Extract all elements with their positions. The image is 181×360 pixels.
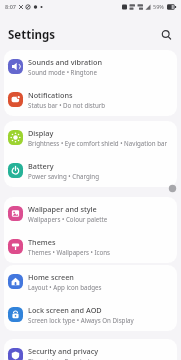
button[interactable]: Lock screen and AOD (4, 298, 177, 331)
staticText: Biometrics • Permission manager (28, 357, 125, 360)
staticText: Notifications (28, 90, 73, 100)
staticText: Status bar • Do not disturb (28, 101, 106, 109)
staticText: Themes • Wallpapers • Icons (28, 248, 111, 256)
staticText: Battery (28, 161, 54, 171)
button[interactable] (158, 26, 175, 43)
staticText: Sounds and vibration (28, 57, 103, 67)
staticText: Themes (28, 237, 56, 247)
staticText: Screen lock type • Always On Display (28, 316, 134, 324)
button[interactable]: Display (4, 121, 177, 154)
staticText: Wallpaper and style (28, 204, 97, 214)
button[interactable]: Security and privacy (4, 339, 177, 360)
staticText: Display (28, 128, 54, 138)
staticText: Layout • App icon badges (28, 283, 102, 291)
staticText: Security and privacy (28, 346, 99, 356)
button[interactable]: Themes (4, 230, 177, 263)
button[interactable]: Sounds and vibration (4, 50, 177, 83)
button[interactable]: Battery (4, 154, 177, 187)
button[interactable]: Home screen (4, 265, 177, 298)
staticText: Home screen (28, 272, 74, 282)
staticText: Wallpapers • Colour palette (28, 215, 108, 223)
staticText: Sound mode • Ringtone (28, 68, 97, 76)
button[interactable]: Notifications (4, 83, 177, 116)
staticText: Lock screen and AOD (28, 305, 102, 315)
button[interactable]: Wallpaper and style (4, 197, 177, 230)
staticText: Settings (8, 27, 56, 43)
staticText: 8:07 (5, 3, 16, 10)
staticText: Power saving • Charging (28, 172, 99, 180)
staticText: Brightness • Eye comfort shield • Naviga… (28, 139, 168, 147)
staticText: 59% (153, 3, 164, 10)
